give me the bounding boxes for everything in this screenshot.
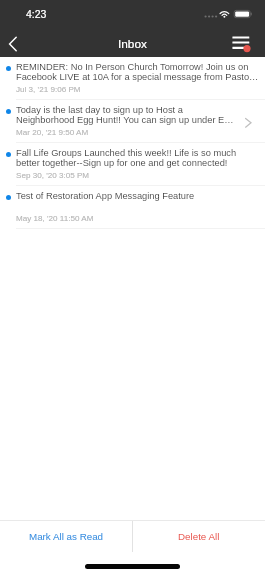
button[interactable]: Delete All [132,521,265,552]
button[interactable]: Back [0,27,28,57]
button[interactable]: Filter messages [233,27,265,57]
staticText: Fall Life Groups Launched this week!! Li… [16,148,237,158]
staticText: REMINDER: No In Person Church Tomorrow! … [16,62,249,72]
staticText: Jul 3, '21 9:06 PM [16,85,81,94]
button[interactable]: REMINDER: No In Person Church Tomorrow! … [0,57,265,100]
staticText: better together--Sign up for one and get… [16,158,228,168]
staticText: Facebook LIVE at 10A for a special messa… [16,72,259,82]
button[interactable]: Today is the last day to sign up to Host… [0,100,265,143]
button[interactable]: Fall Life Groups Launched this week!! Li… [0,143,265,186]
button[interactable]: Mark All as Read [0,521,132,552]
staticText: Inbox [118,37,147,50]
staticText: Delete All [178,531,220,542]
staticText: Neighborhood Egg Hunt!! You can sign up … [16,115,234,125]
staticText: Test of Restoration App Messaging Featur… [16,191,195,201]
staticText: Sep 30, '20 3:05 PM [16,171,90,180]
staticText: 4:23 [26,8,47,20]
staticText: Mark All as Read [29,531,104,542]
staticText: Today is the last day to sign up to Host… [16,105,183,115]
staticText: May 18, '20 11:50 AM [16,214,94,223]
button[interactable]: Test of Restoration App Messaging Featur… [0,186,265,229]
staticText: Mar 20, '21 9:50 AM [16,128,89,137]
